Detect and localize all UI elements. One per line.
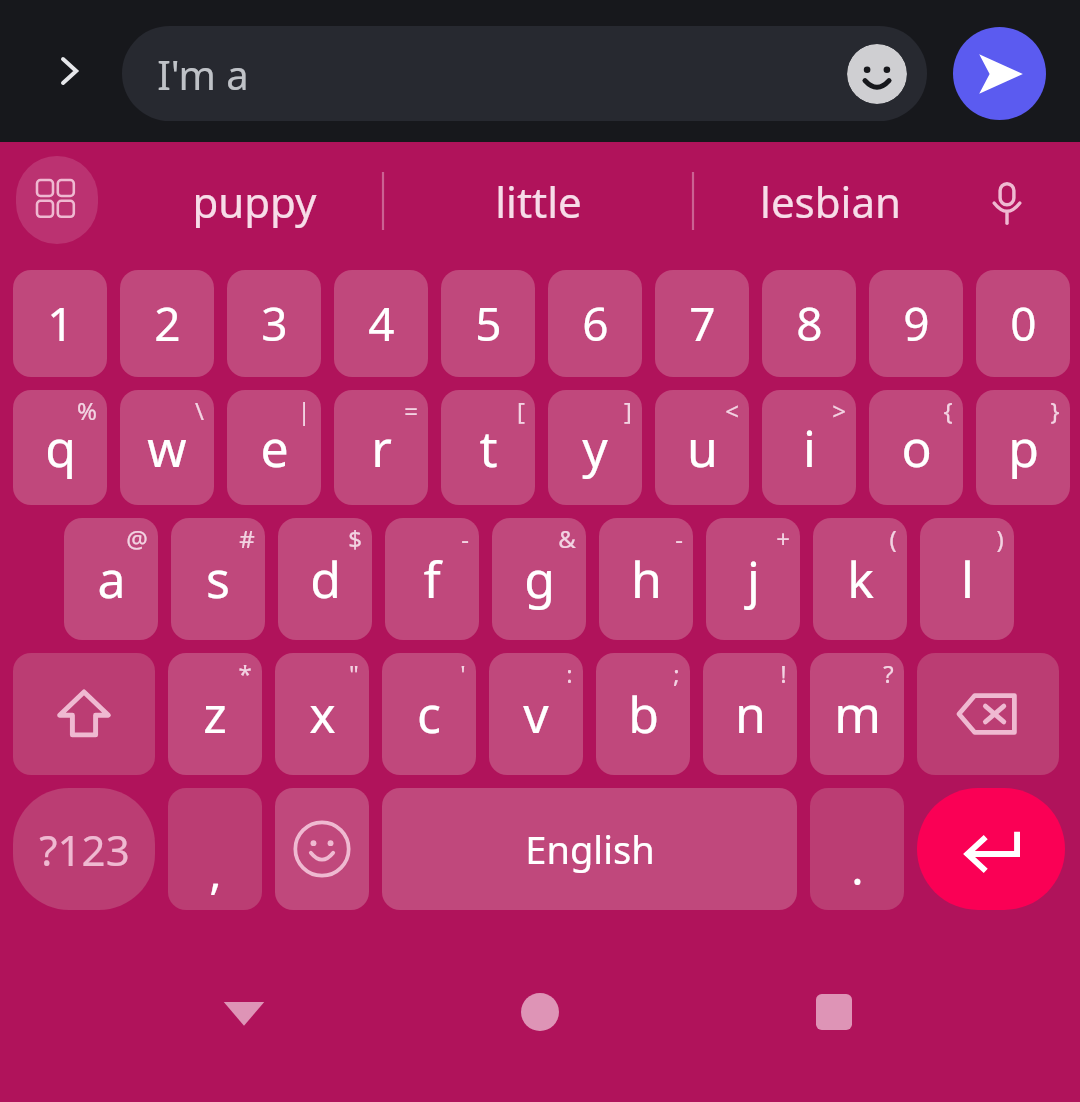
staticText: a [97,545,126,613]
staticText: p [1008,414,1039,482]
staticText: m [834,680,881,748]
staticText: English [525,823,655,875]
staticText: d [310,545,341,613]
button[interactable]: z [168,653,262,775]
staticText: f [423,545,441,613]
staticText: 1 [47,292,74,355]
button[interactable]: , [168,788,262,910]
button[interactable]: 3 [227,270,321,377]
staticText: little [495,173,582,230]
button[interactable]: Emoji [847,44,907,104]
staticText: s [206,545,230,613]
staticText: y [582,414,608,482]
button[interactable]: little [388,152,688,250]
button[interactable]: m [810,653,904,775]
button[interactable]: Home [492,964,588,1060]
staticText: < [725,394,739,427]
button[interactable]: puppy [120,152,388,250]
staticText: ( [889,522,897,555]
button[interactable]: Shift [13,653,155,775]
staticText: . [851,836,864,899]
staticText: c [417,680,441,748]
button[interactable]: Backspace [917,653,1059,775]
button[interactable]: a [64,518,158,640]
button[interactable]: o [869,390,963,505]
button[interactable]: ?123 [13,788,155,910]
button[interactable]: 7 [655,270,749,377]
staticText: 7 [689,292,716,355]
staticText: 2 [154,292,181,355]
staticText: u [687,414,718,482]
staticText: o [901,414,932,482]
staticText: x [309,680,336,748]
button[interactable]: Recent apps [786,964,882,1060]
staticText: ? [883,657,894,690]
button[interactable]: 0 [976,270,1070,377]
button[interactable]: 6 [548,270,642,377]
staticText: ' [460,657,466,690]
staticText: & [558,522,576,555]
button[interactable]: Back [196,964,292,1060]
button[interactable]: I'm a [122,26,927,121]
button[interactable]: lesbian [690,152,970,250]
button[interactable]: h [599,518,693,640]
button[interactable]: 5 [441,270,535,377]
staticText: I'm a [157,47,249,101]
button[interactable]: 9 [869,270,963,377]
button[interactable]: Expand toolbar [36,38,102,104]
button[interactable]: r [334,390,428,505]
button[interactable]: 2 [120,270,214,377]
staticText: ?123 [39,821,130,878]
button[interactable]: English [382,788,797,910]
button[interactable]: Voice input [968,164,1046,242]
staticText: i [803,414,816,482]
button[interactable]: Enter [917,788,1065,910]
button[interactable]: y [548,390,642,505]
button[interactable]: l [920,518,1014,640]
staticText: 8 [796,292,823,355]
button[interactable]: Send [953,27,1046,120]
staticText: # [239,522,255,555]
button[interactable]: p [976,390,1070,505]
staticText: lesbian [760,173,901,230]
button[interactable]: 8 [762,270,856,377]
staticText: | [297,394,311,427]
button[interactable]: s [171,518,265,640]
staticText: : [566,657,573,690]
button[interactable]: q [13,390,107,505]
button[interactable]: Toolbar apps [16,156,98,244]
staticText: h [631,545,662,613]
button[interactable]: Emoji keyboard [275,788,369,910]
staticText: 5 [475,292,502,355]
button[interactable]: g [492,518,586,640]
staticText: n [735,680,766,748]
button[interactable]: w [120,390,214,505]
staticText: v [523,680,549,748]
staticText: e [260,414,289,482]
staticText: $ [348,522,362,555]
staticText: k [847,545,874,613]
button[interactable]: u [655,390,749,505]
button[interactable]: i [762,390,856,505]
staticText: 3 [261,292,288,355]
button[interactable]: 4 [334,270,428,377]
staticText: { [943,394,953,427]
button[interactable]: f [385,518,479,640]
staticText: 9 [903,292,930,355]
staticText: z [203,680,227,748]
button[interactable]: c [382,653,476,775]
button[interactable]: t [441,390,535,505]
button[interactable]: 1 [13,270,107,377]
button[interactable]: v [489,653,583,775]
button[interactable]: e [227,390,321,505]
button[interactable]: n [703,653,797,775]
staticText: 4 [368,292,395,355]
staticText: ] [624,394,632,427]
button[interactable]: b [596,653,690,775]
staticText: , [209,840,222,903]
button[interactable]: j [706,518,800,640]
button[interactable]: x [275,653,369,775]
button[interactable]: d [278,518,372,640]
button[interactable]: . [810,788,904,910]
button[interactable]: k [813,518,907,640]
